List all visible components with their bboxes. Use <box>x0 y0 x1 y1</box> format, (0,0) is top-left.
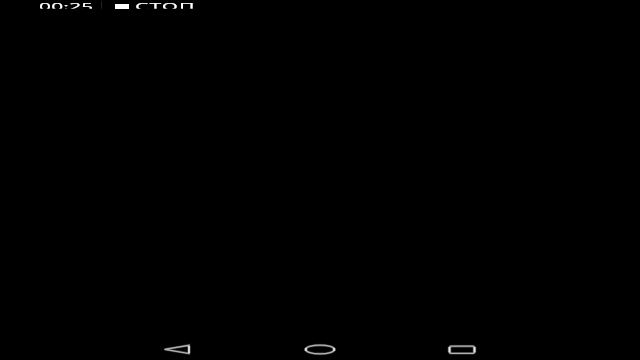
staticText: 00:25 <box>39 1 95 9</box>
button[interactable]: Стоп <box>115 0 187 16</box>
button[interactable]: Главный экран <box>294 334 346 360</box>
button[interactable]: Обзор <box>436 334 488 360</box>
button[interactable]: Назад <box>151 334 203 360</box>
staticText: СТОП <box>135 1 196 9</box>
